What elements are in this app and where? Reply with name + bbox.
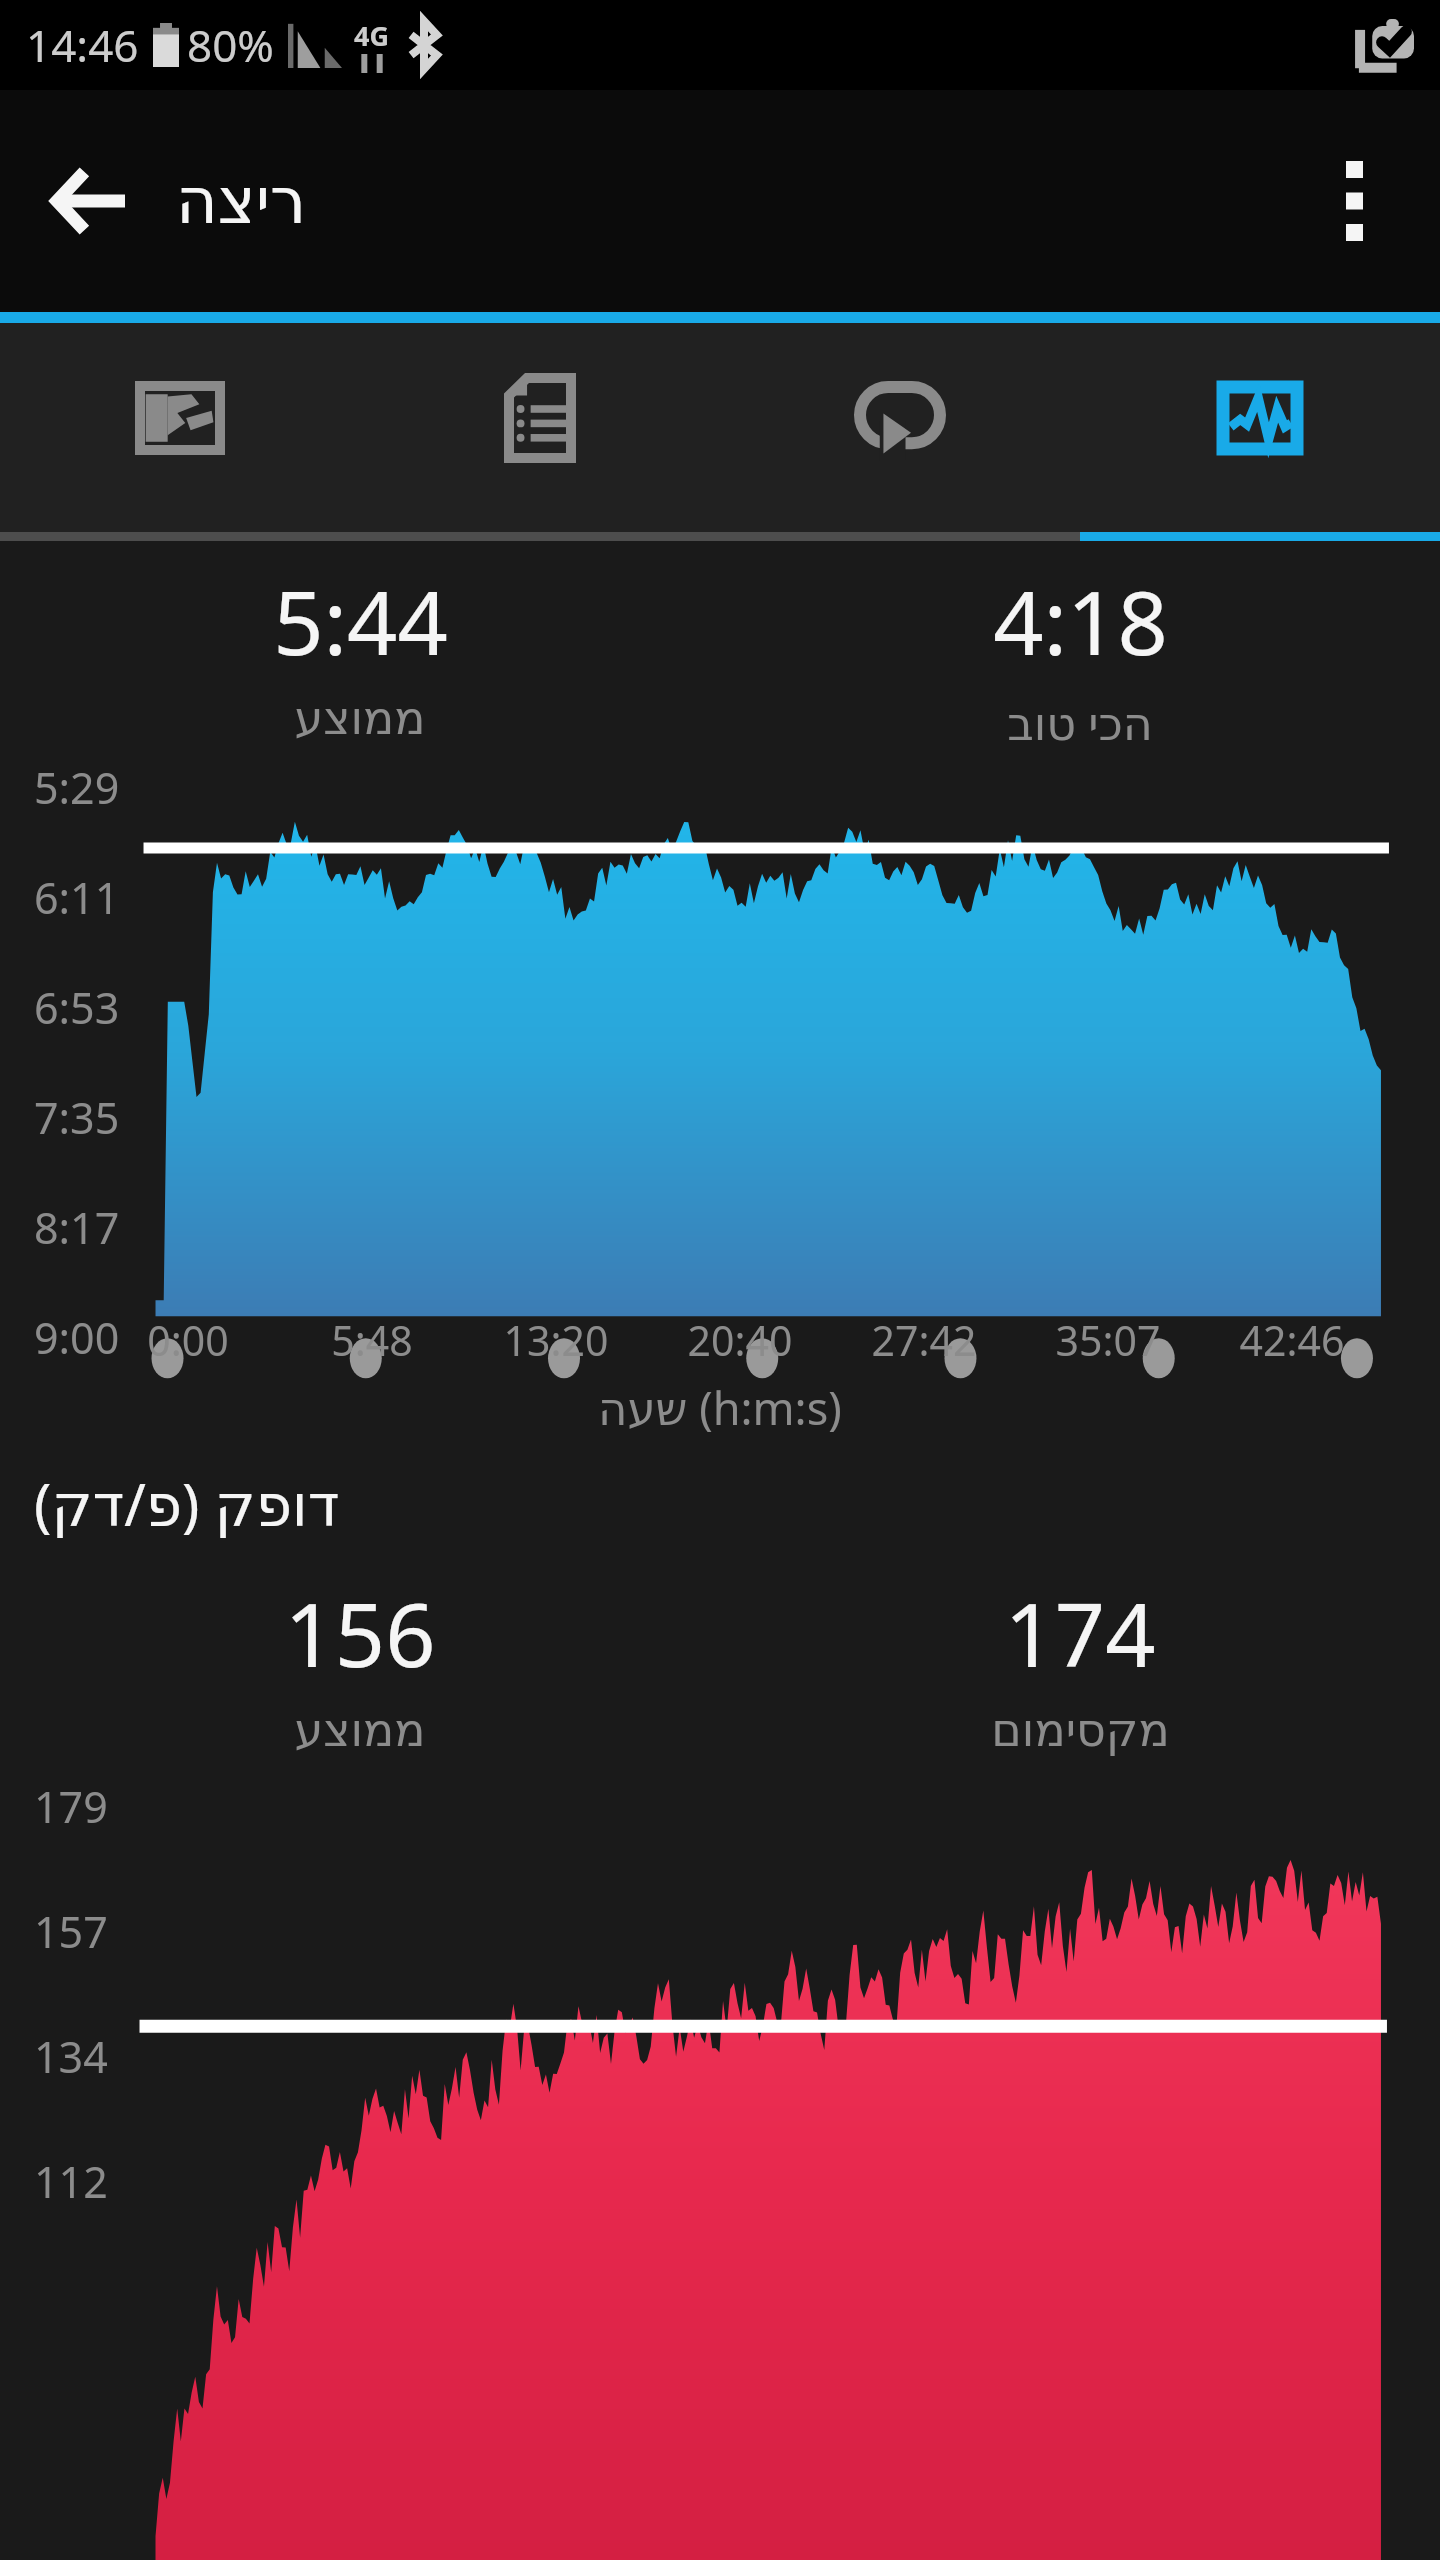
staticText: 174 [1004,1573,1156,1693]
button[interactable]: Charts [1080,323,1440,541]
button[interactable]: Details [360,323,720,541]
button[interactable]: Laps [720,323,1080,541]
staticText: 42:46 [1200,1312,1384,1368]
staticText: 9:00 [34,1308,120,1367]
staticText: 14:46 [26,15,139,75]
staticText: 4:18 [993,561,1168,681]
button[interactable]: Back [30,141,150,261]
staticText: 157 [34,1902,108,1961]
staticText: דופק (פ/דק) [34,1464,340,1543]
staticText: ממוצע [294,1703,426,1757]
staticText: 5:44 [273,561,448,681]
staticText: 5:48 [280,1312,464,1368]
staticText: 112 [34,2152,108,2211]
staticText: ריצה [176,164,307,239]
staticText: 179 [34,1777,108,1836]
staticText: 0:00 [96,1312,280,1368]
staticText: 4G [354,17,389,54]
staticText: מקסימום [991,1703,1170,1757]
staticText: 7:35 [34,1088,120,1147]
staticText: 35:07 [1016,1312,1200,1368]
staticText: 13:20 [464,1312,648,1368]
staticText: 6:11 [34,868,120,927]
staticText: 5:29 [34,758,120,817]
staticText: 20:40 [648,1312,832,1368]
staticText: 8:17 [34,1198,120,1257]
staticText: 156 [284,1573,436,1693]
button[interactable]: More options [1294,141,1414,261]
staticText: 6:53 [34,978,120,1037]
staticText: ממוצע [294,691,426,745]
staticText: 80% [187,15,274,75]
staticText: הכי טוב [1007,691,1153,754]
button[interactable]: Map [0,323,360,541]
staticText: שעה (h:m:s) [598,1377,842,1438]
staticText: 134 [34,2027,108,2086]
staticText: 27:42 [832,1312,1016,1368]
